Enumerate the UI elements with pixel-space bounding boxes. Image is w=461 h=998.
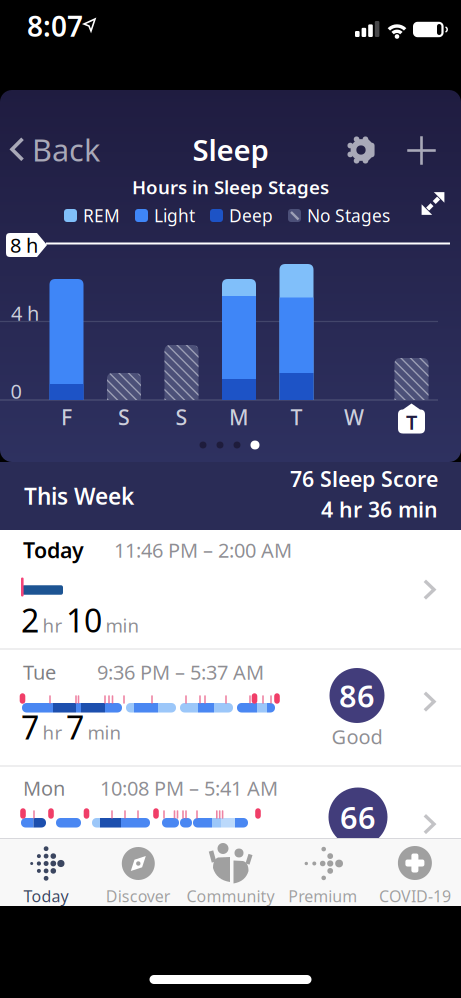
button[interactable]: Mon	[0, 766, 461, 838]
staticText: S	[118, 403, 130, 431]
staticText: hr	[42, 613, 62, 638]
staticText: min	[105, 613, 139, 638]
button[interactable]	[421, 192, 445, 215]
staticText: 7	[21, 706, 39, 748]
staticText: 0	[10, 378, 21, 404]
button[interactable]: Today	[1, 838, 91, 906]
staticText: 10	[66, 599, 102, 641]
staticText: This Week	[24, 481, 134, 511]
staticText: 66	[340, 797, 376, 837]
staticText: Light	[154, 204, 195, 227]
staticText: Hours in Sleep Stages	[132, 175, 329, 199]
staticText: 4 h	[11, 300, 39, 326]
staticText: Premium	[288, 885, 357, 907]
staticText: 2	[21, 599, 39, 641]
button[interactable]: Today	[0, 530, 461, 649]
staticText: 9:36 PM – 5:37 AM	[97, 659, 264, 685]
staticText: 8 h	[10, 232, 38, 258]
staticText: S	[175, 403, 187, 431]
staticText: 11:46 PM – 2:00 AM	[114, 537, 292, 563]
staticText: Back	[32, 129, 100, 170]
staticText: Mon	[23, 775, 65, 801]
staticText: 7	[66, 706, 84, 748]
button[interactable]	[346, 135, 375, 164]
staticText: T	[290, 403, 302, 431]
button[interactable]: Back	[10, 129, 100, 170]
button[interactable]: COVID-19	[370, 838, 460, 906]
staticText: hr	[42, 720, 62, 745]
staticText: F	[61, 403, 72, 431]
button[interactable]	[406, 135, 436, 165]
staticText: Today	[24, 885, 69, 907]
staticText: 10:08 PM – 5:41 AM	[100, 775, 278, 801]
staticText: Tue	[23, 659, 56, 685]
staticText: No Stages	[307, 204, 390, 227]
staticText: Today	[23, 536, 84, 564]
button[interactable]: Discover	[93, 838, 183, 906]
button[interactable]: Community	[175, 838, 285, 906]
staticText: M	[229, 403, 249, 431]
button[interactable]: Premium	[278, 838, 368, 906]
staticText: Community	[186, 885, 274, 907]
staticText: 4 hr 36 min	[321, 495, 438, 523]
staticText: T	[406, 409, 417, 435]
staticText: 86	[339, 675, 375, 716]
button[interactable]: Tue	[0, 649, 461, 766]
staticText: COVID-19	[379, 885, 451, 907]
staticText: Deep	[229, 204, 273, 227]
staticText: 8:07	[27, 7, 83, 45]
staticText: W	[344, 403, 364, 431]
staticText: REM	[83, 204, 120, 227]
staticText: Discover	[106, 885, 171, 907]
staticText: Good	[331, 723, 382, 750]
staticText: Sleep	[192, 130, 268, 169]
staticText: 76 Sleep Score	[290, 465, 438, 493]
staticText: min	[87, 720, 121, 745]
